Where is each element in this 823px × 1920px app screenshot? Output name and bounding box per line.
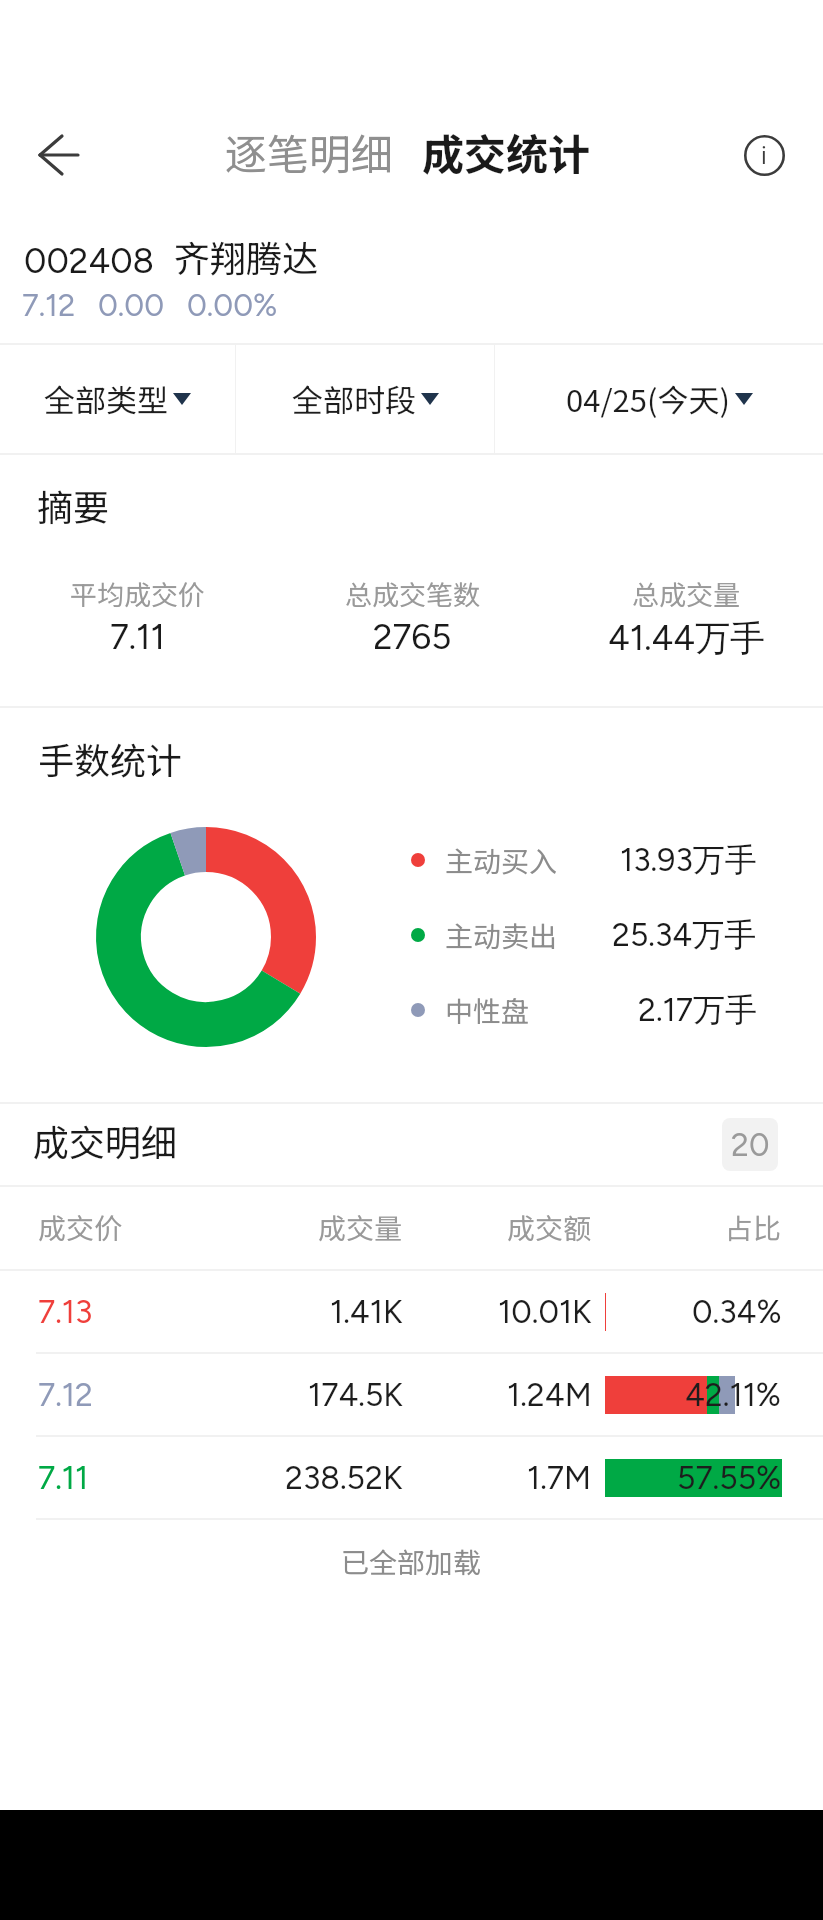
staticText: 7.11 [110, 616, 165, 658]
staticText: 总成交笔数 [345, 574, 480, 613]
staticText: 主动买入 [445, 840, 558, 880]
button[interactable]: 全部时段 [236, 344, 494, 453]
staticText: 占比 [725, 1207, 782, 1248]
button[interactable]: 逐笔明细 [219, 109, 400, 194]
staticText: 成交价 [38, 1207, 123, 1248]
button[interactable]: 7.12 [0, 1353, 823, 1436]
staticText: 0.34% [692, 1293, 782, 1331]
button[interactable]: Back [24, 120, 94, 190]
staticText: 0.00% [187, 287, 278, 324]
staticText: 002408 [24, 240, 155, 282]
staticText: 174.5K [308, 1376, 403, 1414]
staticText: 成交额 [507, 1207, 592, 1248]
staticText: 平均成交价 [70, 574, 205, 613]
staticText: 20 [731, 1126, 770, 1164]
staticText: 成交量 [318, 1207, 403, 1248]
staticText: 57.55% [677, 1459, 782, 1497]
staticText: 成交统计 [422, 121, 591, 182]
staticText: 全部类型 [44, 376, 168, 421]
staticText: 手数统计 [38, 732, 183, 784]
staticText: 04/25(今天) [566, 376, 730, 421]
staticText: 1.7M [527, 1459, 592, 1497]
staticText: 10.01K [498, 1293, 592, 1331]
button[interactable]: 20 [722, 1118, 778, 1171]
staticText: 7.12 [38, 1376, 93, 1414]
staticText: 1.41K [330, 1293, 403, 1331]
button[interactable]: 全部类型 [0, 344, 235, 453]
staticText: 逐笔明细 [225, 121, 394, 182]
staticText: 主动卖出 [445, 915, 558, 955]
button[interactable]: 成交统计 [416, 109, 597, 194]
staticText: 13.93万手 [620, 840, 757, 880]
staticText: 中性盘 [445, 990, 530, 1030]
staticText: 全部时段 [292, 376, 416, 421]
staticText: 成交明细 [33, 1114, 178, 1166]
button[interactable]: 7.13 [0, 1270, 823, 1353]
staticText: 已全部加载 [341, 1541, 482, 1582]
button[interactable]: Info [729, 120, 799, 190]
button[interactable]: 04/25(今天) [495, 344, 823, 453]
staticText: 238.52K [285, 1459, 403, 1497]
staticText: 2.17万手 [638, 990, 757, 1030]
staticText: 7.12 [22, 287, 76, 324]
staticText: 7.11 [38, 1459, 89, 1497]
staticText: 齐翔腾达 [174, 230, 319, 282]
staticText: 25.34万手 [612, 915, 757, 955]
staticText: 42.11% [685, 1376, 782, 1414]
staticText: 7.13 [38, 1293, 93, 1331]
button[interactable]: 7.11 [0, 1436, 823, 1519]
staticText: 摘要 [37, 479, 110, 531]
staticText: i [761, 140, 767, 170]
staticText: 41.44万手 [608, 616, 765, 660]
staticText: 0.00 [98, 287, 165, 324]
staticText: 总成交量 [632, 574, 740, 613]
staticText: 1.24M [507, 1376, 592, 1414]
staticText: 2765 [373, 616, 452, 658]
